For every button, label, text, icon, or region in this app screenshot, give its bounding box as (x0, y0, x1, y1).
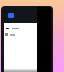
button[interactable] (4, 31, 37, 38)
button[interactable] (4, 25, 37, 31)
